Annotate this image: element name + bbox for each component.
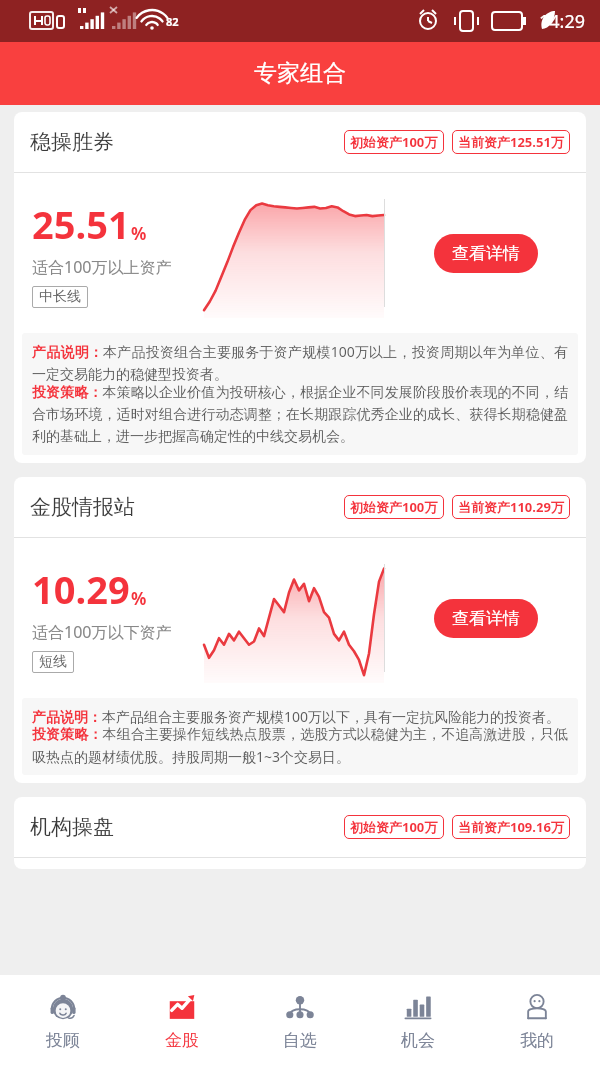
button[interactable]: 我的 [482,985,592,1057]
staticText: 14:29 [539,9,586,34]
staticText: 适合100万以下资产 [32,621,172,643]
staticText: 10.29 [32,563,130,615]
staticText: 当前资产109.16万 [458,818,564,836]
button[interactable]: 查看详情 [434,599,538,638]
staticText: 当前资产125.51万 [458,133,564,151]
button[interactable]: 稳操胜券 [14,112,586,463]
staticText: 金股 [165,1030,199,1051]
button[interactable]: 机会 [363,985,473,1057]
staticText: 产品说明：本产品投资组合主要服务于资产规模100万以上，投资周期以年为单位、有一… [32,342,568,384]
staticText: 金股情报站 [30,494,135,520]
staticText: 投资策略：本组合主要操作短线热点股票，选股方式以稳健为主，不追高激进股，只低吸热… [32,726,568,766]
staticText: 查看详情 [452,243,520,264]
staticText: 初始资产100万 [350,498,438,516]
button[interactable]: 自选 [245,985,355,1057]
staticText: 专家组合 [254,59,346,88]
staticText: 机会 [401,1030,435,1051]
staticText: 产品说明：本产品组合主要服务资产规模100万以下，具有一定抗风险能力的投资者。 [32,707,561,726]
staticText: % [131,222,147,245]
staticText: 自选 [283,1030,317,1051]
staticText: 82 [166,14,179,29]
staticText: 查看详情 [452,608,520,629]
staticText: 初始资产100万 [350,818,438,836]
staticText: 适合100万以上资产 [32,256,172,278]
staticText: 25.51 [32,198,130,250]
staticText: 短线 [39,653,67,671]
staticText: 机构操盘 [30,814,114,840]
staticText: 稳操胜券 [30,129,114,155]
button[interactable]: 查看详情 [434,234,538,273]
staticText: 我的 [520,1030,554,1051]
staticText: 初始资产100万 [350,133,438,151]
button[interactable]: 金股情报站 [14,477,586,783]
staticText: 投顾 [46,1030,80,1051]
staticText: 当前资产110.29万 [458,498,564,516]
button[interactable]: 投顾 [8,985,118,1057]
button[interactable]: 金股 [127,985,237,1057]
staticText: 中长线 [39,288,81,306]
staticText: % [131,587,147,610]
staticText: 投资策略：本策略以企业价值为投研核心，根据企业不同发展阶段股价表现的不同，结合市… [32,384,568,446]
button[interactable]: 机构操盘 [14,797,586,869]
